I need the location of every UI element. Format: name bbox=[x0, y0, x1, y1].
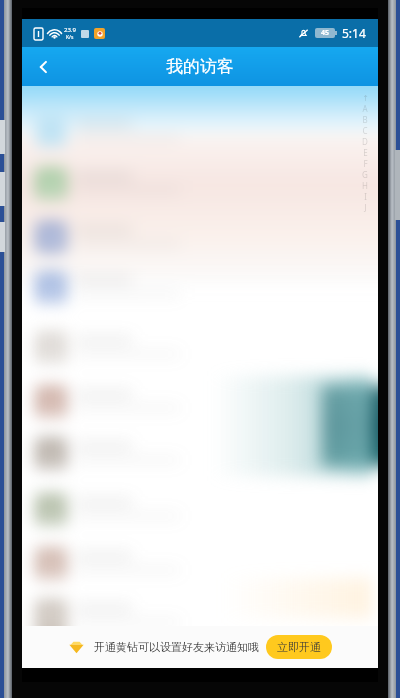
button[interactable]: 开通黄钻可以设置好友来访通知哦 bbox=[22, 626, 378, 668]
staticText: E bbox=[363, 147, 368, 158]
staticText: 立即开通 bbox=[277, 640, 321, 654]
button[interactable]: Back bbox=[22, 47, 66, 86]
staticText: 我的访客 bbox=[166, 56, 234, 77]
button[interactable]: Alphabet index bbox=[357, 94, 373, 213]
staticText: J bbox=[364, 202, 367, 213]
staticText: ↑ bbox=[362, 94, 369, 103]
staticText: I bbox=[364, 191, 367, 202]
staticText: A bbox=[362, 103, 368, 114]
staticText: 开通黄钻可以设置好友来访通知哦 bbox=[94, 640, 259, 654]
staticText: 23.9 bbox=[64, 26, 76, 34]
button[interactable]: 立即开通 bbox=[266, 635, 332, 659]
staticText: K/s bbox=[66, 34, 74, 41]
staticText: C bbox=[362, 125, 368, 136]
staticText: 5:14 bbox=[342, 25, 366, 41]
staticText: 45 bbox=[321, 28, 330, 38]
staticText: F bbox=[363, 158, 368, 169]
staticText: B bbox=[362, 114, 368, 125]
staticText: H bbox=[362, 180, 368, 191]
staticText: D bbox=[362, 136, 368, 147]
staticText: G bbox=[362, 169, 368, 180]
